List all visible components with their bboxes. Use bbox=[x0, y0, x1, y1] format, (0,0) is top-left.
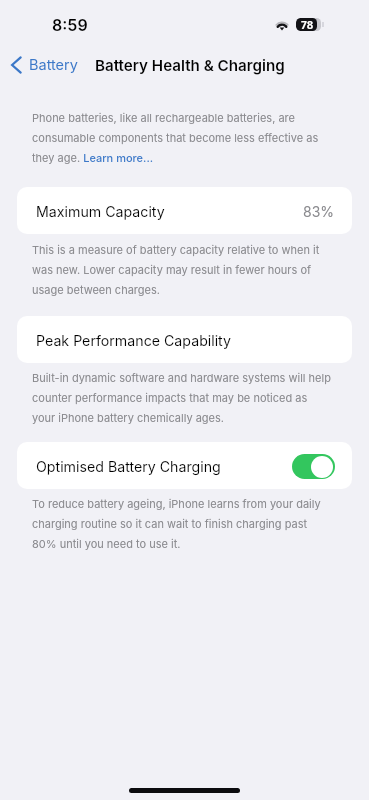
staticText: 78 bbox=[301, 19, 314, 31]
button[interactable]: Optimised Battery Charging bbox=[17, 442, 352, 489]
staticText: Phone batteries, like all rechargeable b… bbox=[32, 106, 332, 166]
staticText: This is a measure of battery capacity re… bbox=[32, 238, 332, 298]
staticText: Built-in dynamic software and hardware s… bbox=[32, 366, 332, 426]
button[interactable]: Maximum Capacity bbox=[17, 187, 352, 234]
staticText: Optimised Battery Charging bbox=[36, 458, 221, 475]
button[interactable]: Battery bbox=[11, 56, 78, 74]
staticText: Battery bbox=[29, 56, 78, 74]
button[interactable]: Optimised Battery Charging toggle bbox=[292, 454, 335, 479]
button[interactable]: Peak Performance Capability bbox=[17, 316, 352, 363]
staticText: To reduce battery ageing, iPhone learns … bbox=[32, 492, 332, 552]
staticText: 8:59 bbox=[52, 15, 88, 34]
staticText: Maximum Capacity bbox=[36, 203, 165, 220]
staticText: 83% bbox=[303, 203, 335, 220]
staticText: Peak Performance Capability bbox=[36, 332, 232, 349]
staticText: Battery Health & Charging bbox=[95, 56, 285, 74]
